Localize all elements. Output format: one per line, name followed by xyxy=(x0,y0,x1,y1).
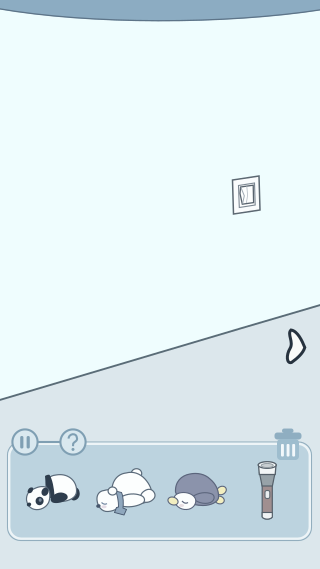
button[interactable]: Pause xyxy=(0,0,320,569)
button[interactable]: Help xyxy=(0,0,320,569)
button[interactable]: Light switch xyxy=(0,0,320,569)
button[interactable]: Trash xyxy=(0,0,320,569)
button[interactable]: Flashlight xyxy=(0,0,320,569)
